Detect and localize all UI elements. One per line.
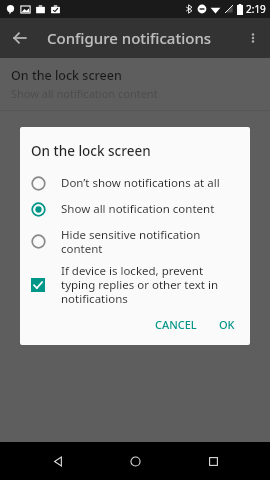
staticText: OK: [219, 317, 235, 332]
staticText: 2:19: [246, 2, 266, 16]
button[interactable]: If device is locked, prevent typing repl…: [20, 261, 250, 308]
button[interactable]: Back: [38, 442, 78, 480]
staticText: Configure notifications: [47, 28, 212, 48]
staticText: Show all notification content: [61, 201, 215, 217]
button[interactable]: More options: [236, 21, 270, 55]
staticText: On the lock screen: [31, 142, 151, 160]
button[interactable]: Show all notification content: [20, 196, 250, 222]
button[interactable]: Navigate up: [0, 18, 40, 58]
button[interactable]: Home: [115, 442, 155, 480]
staticText: Hide sensitive notification content: [61, 227, 239, 256]
button[interactable]: Recent apps: [193, 442, 233, 480]
staticText: Don’t show notifications at all: [61, 175, 220, 191]
button[interactable]: On the lock screen: [0, 58, 270, 110]
button[interactable]: OK: [212, 312, 242, 337]
staticText: On the lock screen: [11, 67, 122, 84]
staticText: If device is locked, prevent typing repl…: [61, 263, 239, 306]
button[interactable]: Don’t show notifications at all: [20, 170, 250, 196]
button[interactable]: CANCEL: [148, 312, 204, 337]
button[interactable]: Hide sensitive notification content: [20, 222, 250, 261]
staticText: CANCEL: [155, 317, 197, 332]
staticText: Show all notification content: [11, 86, 158, 101]
